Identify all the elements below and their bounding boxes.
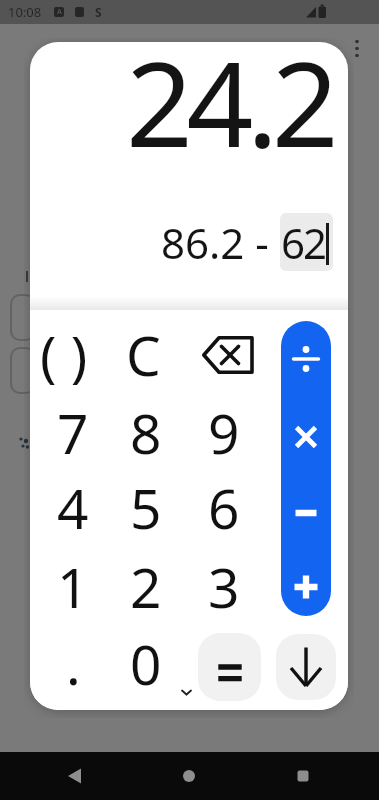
staticText: C bbox=[126, 317, 161, 389]
staticText: 9 bbox=[208, 395, 240, 467]
staticText: 6 bbox=[208, 470, 240, 542]
button[interactable]: 0 bbox=[110, 626, 182, 698]
staticText: 24.2 bbox=[126, 42, 333, 181]
staticText: 86.2 - bbox=[161, 214, 280, 271]
button[interactable]: 7 bbox=[37, 395, 109, 467]
button[interactable] bbox=[281, 400, 331, 474]
button[interactable]: C bbox=[107, 317, 179, 389]
staticText: S bbox=[95, 4, 102, 20]
staticText: 2 bbox=[130, 549, 162, 621]
button[interactable]: 4 bbox=[37, 470, 109, 542]
button[interactable]: . bbox=[37, 626, 109, 698]
staticText: 1 bbox=[57, 549, 89, 621]
button[interactable] bbox=[281, 322, 331, 396]
staticText: 3 bbox=[208, 549, 240, 621]
staticText: 5 bbox=[130, 470, 162, 542]
staticText: 0 bbox=[130, 626, 162, 698]
button[interactable] bbox=[281, 476, 331, 550]
button[interactable]: 9 bbox=[188, 395, 260, 467]
button[interactable]: 1 bbox=[37, 549, 109, 621]
staticText: ( ) bbox=[40, 317, 88, 389]
button[interactable] bbox=[198, 633, 261, 701]
button[interactable] bbox=[276, 634, 336, 700]
button[interactable] bbox=[281, 550, 331, 616]
button[interactable]: 2 bbox=[110, 549, 182, 621]
staticText: 62 bbox=[281, 214, 326, 270]
staticText: 7 bbox=[57, 395, 89, 467]
button[interactable]: ( ) bbox=[30, 317, 100, 389]
button[interactable]: 6 bbox=[188, 470, 260, 542]
staticText: A bbox=[57, 7, 62, 17]
button[interactable]: 5 bbox=[110, 470, 182, 542]
staticText: . bbox=[66, 626, 81, 698]
staticText: 8 bbox=[130, 395, 162, 467]
button[interactable] bbox=[192, 319, 264, 391]
staticText: 10:08 bbox=[8, 3, 42, 21]
button[interactable]: 8 bbox=[110, 395, 182, 467]
button[interactable]: 3 bbox=[188, 549, 260, 621]
staticText: 4 bbox=[57, 470, 89, 542]
